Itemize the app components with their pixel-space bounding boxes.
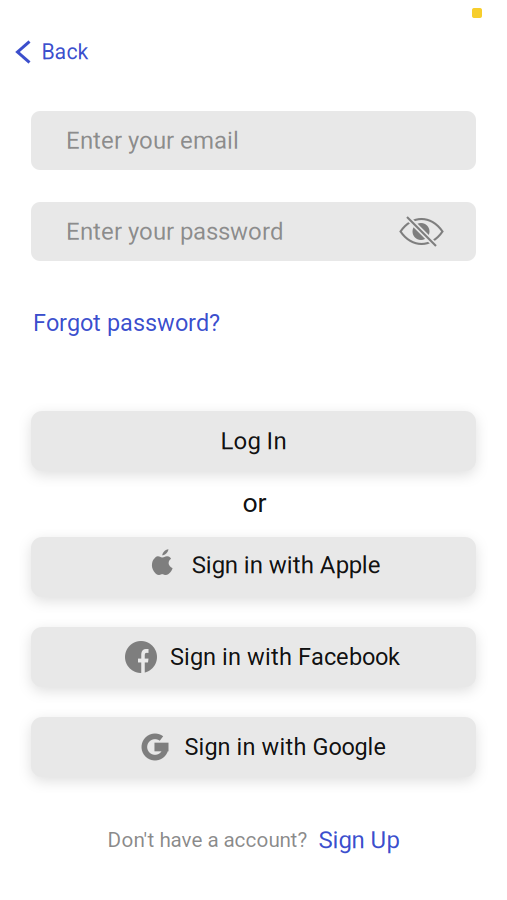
staticText: Sign in with Facebook — [170, 643, 400, 671]
staticText: or — [242, 487, 266, 519]
button[interactable]: Enter your password — [31, 202, 476, 261]
button[interactable]: Forgot password? — [33, 304, 233, 342]
button[interactable]: Sign in with Facebook — [31, 627, 476, 687]
staticText: Sign Up — [318, 826, 399, 854]
button[interactable]: Sign in with Google — [31, 717, 476, 777]
staticText: Sign in with Apple — [192, 551, 381, 579]
staticText: Enter your email — [66, 126, 239, 154]
staticText: Don't have a account? — [107, 828, 307, 852]
staticText: Forgot password? — [33, 309, 220, 337]
staticText: Sign in with Google — [184, 733, 385, 761]
button[interactable]: Log In — [31, 411, 476, 471]
button[interactable]: Back — [0, 30, 124, 74]
staticText: Log In — [220, 427, 286, 455]
button[interactable]: Sign Up — [318, 826, 399, 854]
button[interactable]: Sign in with Apple — [31, 537, 476, 597]
button[interactable]: Show password — [395, 209, 447, 253]
button[interactable]: Enter your email — [31, 111, 476, 170]
staticText: Back — [41, 39, 88, 64]
staticText: Enter your password — [66, 217, 284, 245]
